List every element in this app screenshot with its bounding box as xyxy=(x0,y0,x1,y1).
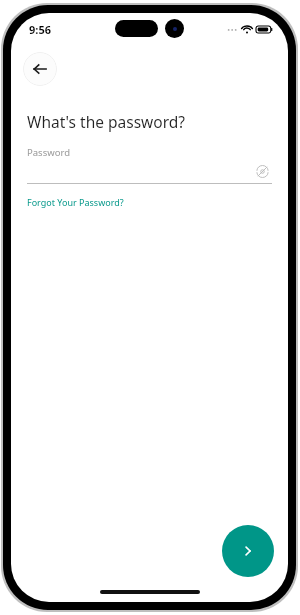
button[interactable]: Forgot Your Password? xyxy=(27,196,124,208)
staticText: What's the password? xyxy=(27,111,186,132)
button[interactable]: Back xyxy=(23,52,57,86)
staticText: Forgot Your Password? xyxy=(27,196,124,208)
staticText: 9:56 xyxy=(29,22,51,37)
button[interactable]: Show password xyxy=(252,161,272,181)
button[interactable]: Continue xyxy=(222,525,274,577)
staticText: Password xyxy=(27,146,272,159)
